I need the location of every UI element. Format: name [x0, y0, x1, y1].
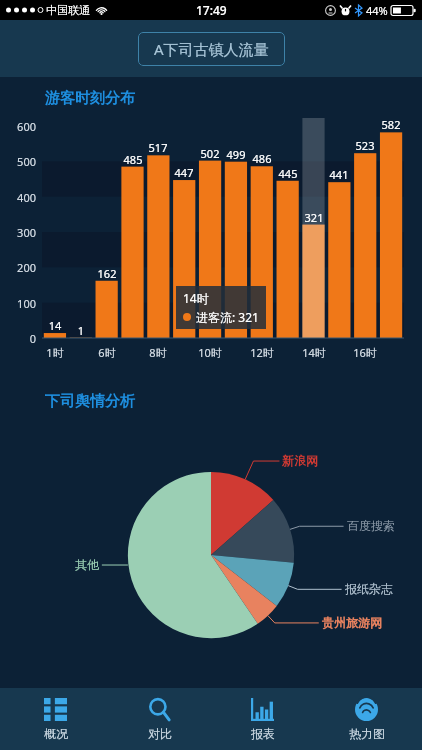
staticText: 10时	[190, 345, 230, 360]
staticText: 14时	[294, 345, 334, 360]
staticText: 热力图	[349, 726, 385, 741]
staticText: 8时	[138, 345, 178, 360]
staticText: 300	[0, 225, 36, 240]
staticText: 12时	[242, 345, 282, 360]
button[interactable]: 概况	[8, 692, 103, 747]
staticText: 400	[0, 190, 36, 205]
staticText: 1	[61, 323, 101, 338]
staticText: 6时	[87, 345, 127, 360]
staticText: 485	[113, 152, 153, 167]
staticText: 441	[319, 167, 359, 182]
staticText: 报纸杂志	[345, 581, 393, 596]
staticText: 14时	[183, 290, 209, 306]
button[interactable]: 报表	[215, 692, 310, 747]
staticText: 600	[0, 119, 36, 134]
staticText: 486	[242, 151, 282, 166]
staticText: 对比	[148, 726, 172, 741]
staticText: 502	[190, 146, 230, 161]
staticText: 14	[35, 318, 75, 333]
staticText: 517	[138, 140, 178, 155]
staticText: 0	[0, 331, 36, 346]
other: 概况	[44, 698, 67, 721]
staticText: 报表	[251, 726, 275, 741]
button[interactable]: 对比	[112, 692, 207, 747]
staticText: 17:49	[196, 2, 227, 18]
button[interactable]: 热力图	[319, 692, 414, 747]
staticText: 100	[0, 296, 36, 311]
other: 热力图	[355, 698, 378, 721]
staticText: 445	[268, 166, 308, 181]
staticText: 499	[216, 147, 256, 162]
staticText: 新浪网	[282, 453, 318, 468]
staticText: 下司舆情分析	[45, 392, 135, 411]
staticText: 16时	[345, 345, 385, 360]
staticText: 其他	[59, 557, 99, 572]
staticText: 523	[345, 138, 385, 153]
staticText: 进客流: 321	[196, 309, 259, 325]
staticText: 44%	[366, 3, 388, 18]
staticText: 1时	[35, 345, 75, 360]
staticText: 200	[0, 260, 36, 275]
staticText: 概况	[44, 726, 68, 741]
staticText: 贵州旅游网	[322, 615, 382, 630]
button[interactable]: A下司古镇人流量	[138, 32, 285, 66]
staticText: 447	[164, 165, 204, 180]
staticText: 中国联通	[46, 3, 90, 17]
staticText: 游客时刻分布	[45, 89, 135, 108]
staticText: 162	[87, 266, 127, 281]
other: 对比	[148, 698, 171, 721]
staticText: 百度搜索	[347, 518, 395, 533]
staticText: 321	[294, 210, 334, 225]
staticText: 500	[0, 154, 36, 169]
staticText: 582	[371, 117, 411, 132]
other: 报表	[251, 698, 274, 721]
staticText: A下司古镇人流量	[154, 39, 269, 59]
